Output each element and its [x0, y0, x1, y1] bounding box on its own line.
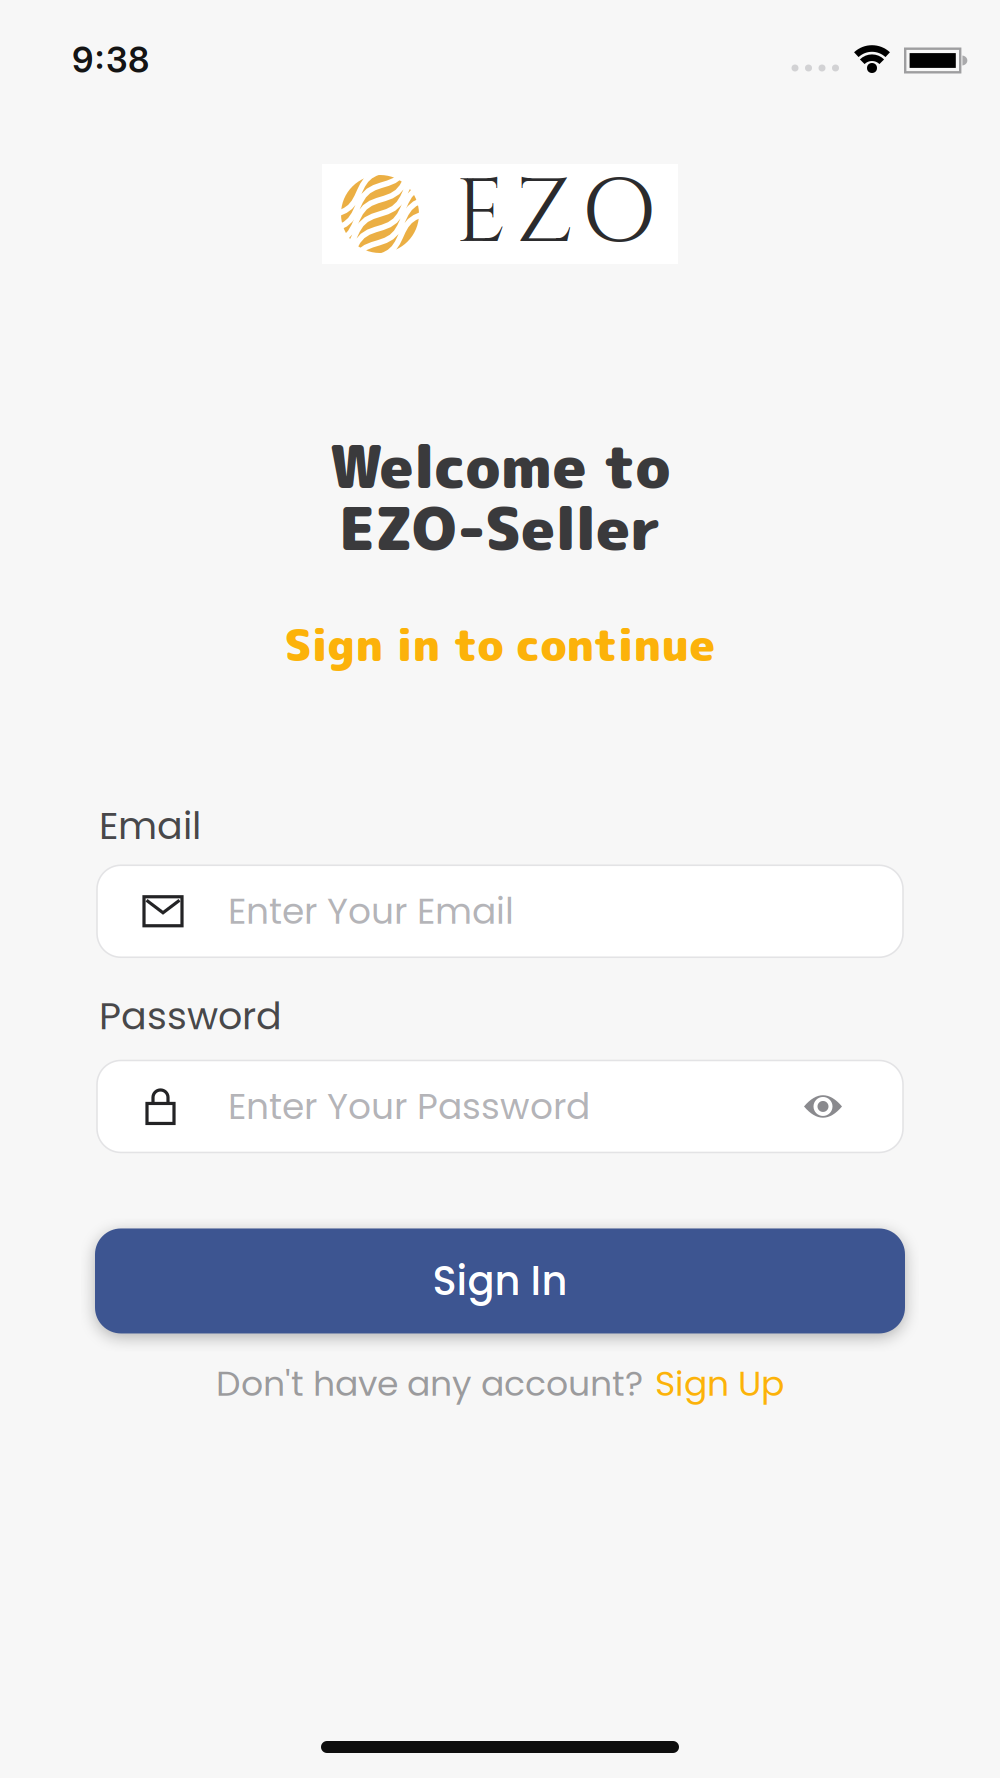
- staticText: Welcome to: [329, 425, 670, 507]
- staticText: E: [455, 154, 507, 274]
- button[interactable]: Sign In: [95, 1228, 905, 1333]
- staticText: EZO-Seller: [339, 487, 661, 569]
- button[interactable]: Enter Your Email: [97, 865, 903, 957]
- staticText: O: [581, 154, 656, 274]
- button[interactable]: Sign Up: [655, 1359, 784, 1408]
- staticText: Email: [99, 799, 201, 852]
- button[interactable]: Show password: [804, 1095, 842, 1118]
- staticText: Z: [515, 154, 573, 274]
- staticText: Sign in to continue: [284, 614, 715, 675]
- staticText: Password: [99, 989, 282, 1042]
- staticText: Enter Your Email: [228, 886, 514, 936]
- staticText: Sign In: [432, 1253, 567, 1309]
- staticText: 9 : 38: [72, 39, 149, 81]
- staticText: Sign Up: [655, 1359, 784, 1408]
- staticText: Don't have any account?: [216, 1359, 643, 1408]
- button[interactable]: Enter Your Password: [97, 1060, 903, 1152]
- staticText: Enter Your Password: [228, 1081, 590, 1132]
